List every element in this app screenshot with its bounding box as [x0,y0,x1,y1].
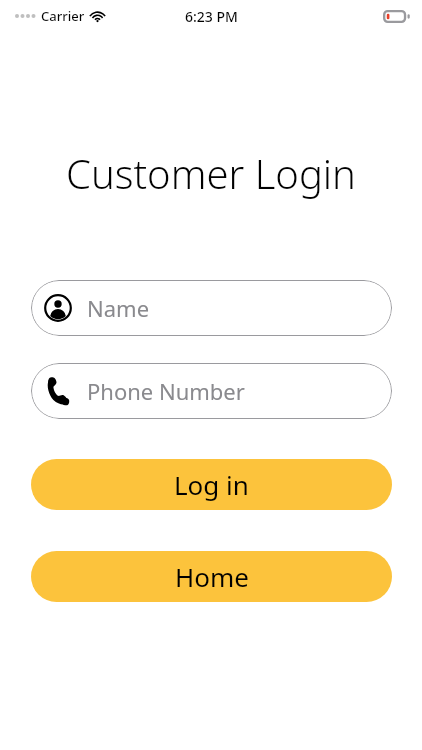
staticText: Name [87,293,150,323]
button[interactable]: Home [31,551,392,602]
staticText: Home [175,559,249,594]
staticText: 6:23 PM [185,7,238,26]
button[interactable]: Phone Number [31,363,392,419]
staticText: Phone Number [87,376,245,406]
button[interactable]: Log in [31,459,392,510]
staticText: Carrier [41,7,85,25]
staticText: Customer Login [0,146,422,200]
button[interactable]: Name [31,280,392,336]
staticText: Log in [174,467,249,502]
